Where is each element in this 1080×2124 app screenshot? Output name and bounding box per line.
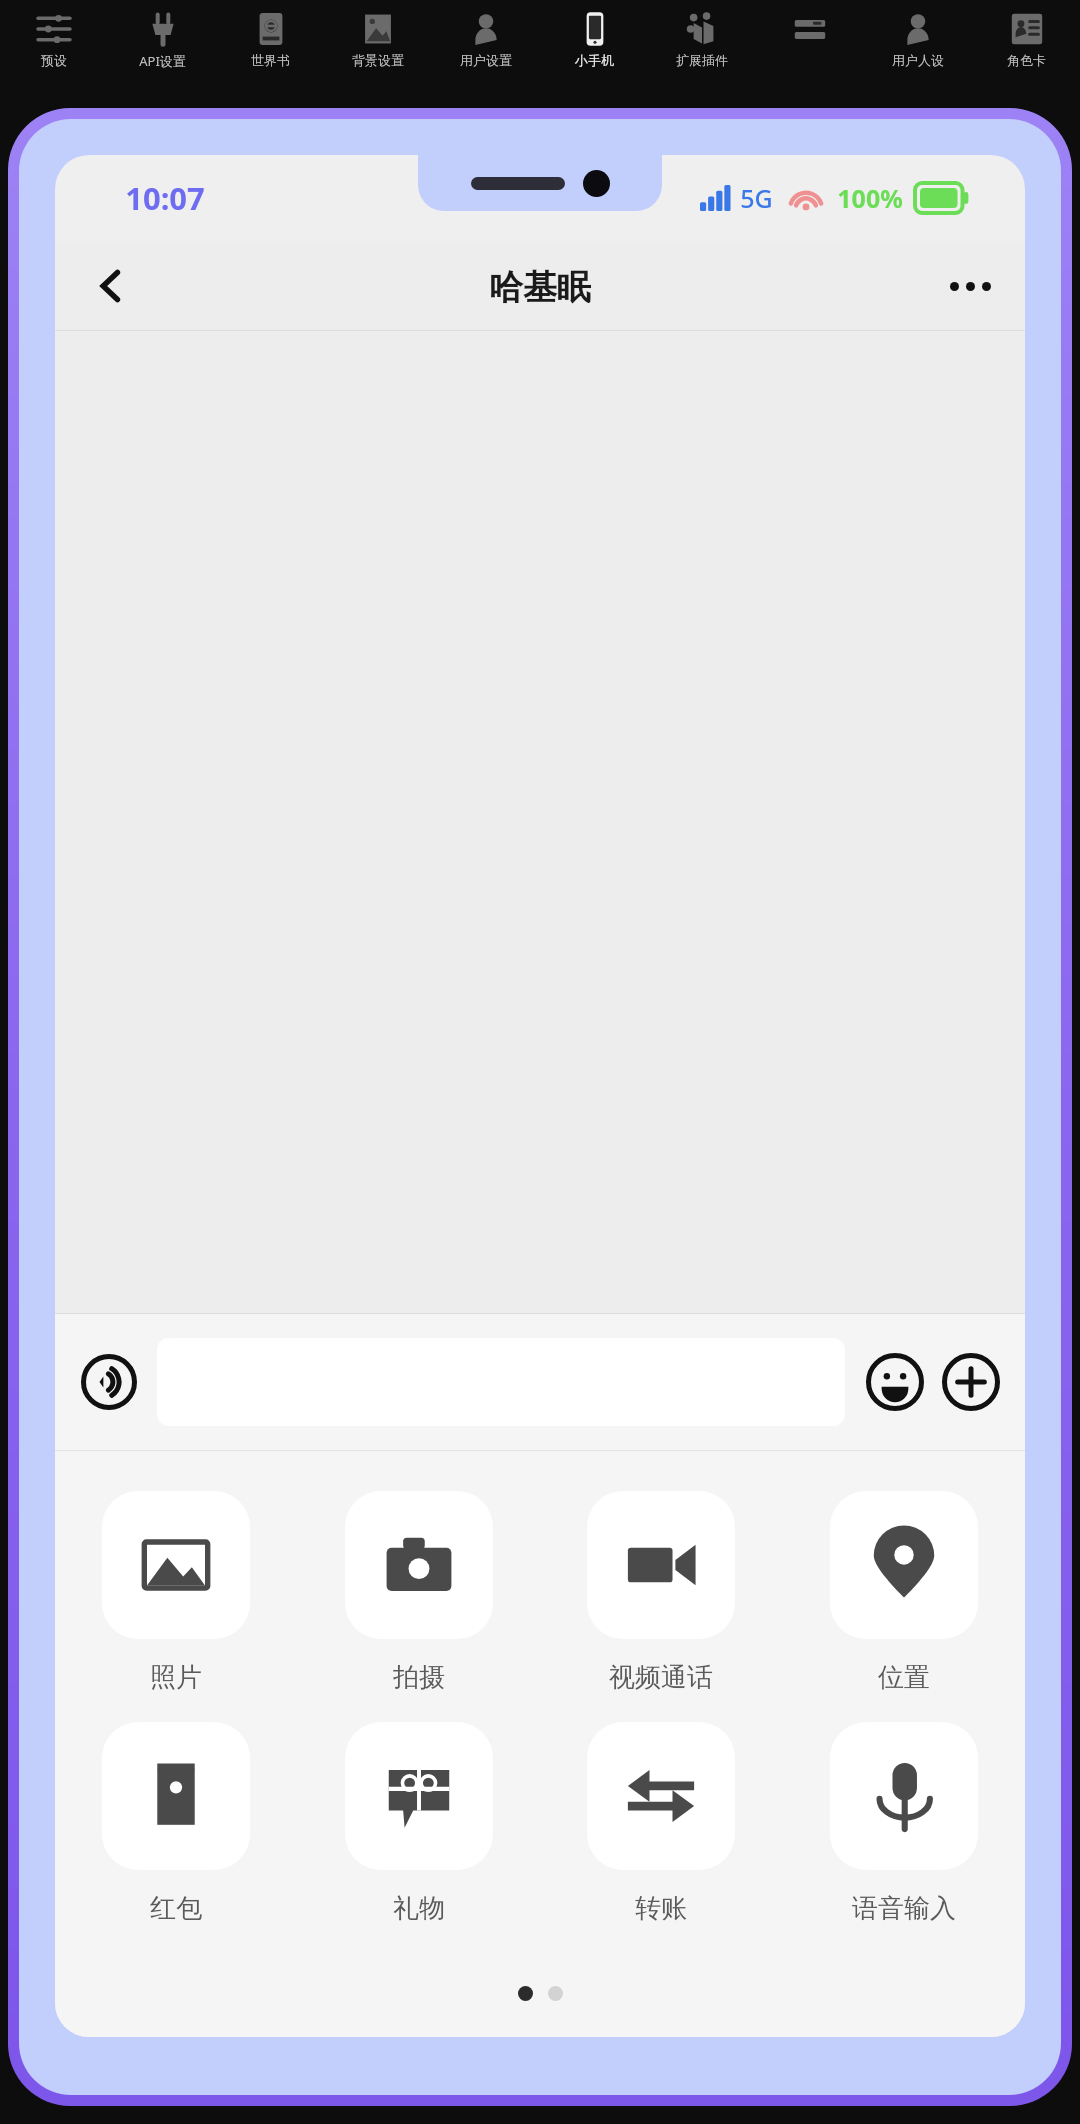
button[interactable]: 世界书	[216, 0, 324, 68]
staticText: 照片	[150, 1661, 202, 1694]
button[interactable]: 用户人设	[864, 0, 972, 68]
button[interactable]: 视频通话	[568, 1491, 754, 1694]
staticText: API设置	[139, 52, 186, 70]
button[interactable]: 小手机	[540, 0, 648, 68]
staticText: 扩展插件	[676, 52, 728, 68]
staticText: 礼物	[393, 1892, 445, 1925]
button[interactable]: 拍摄	[326, 1491, 512, 1694]
button[interactable]: Voice message	[73, 1346, 145, 1418]
button[interactable]: 预设	[0, 0, 108, 68]
button[interactable]: 照片	[83, 1491, 269, 1694]
staticText: 语音输入	[852, 1892, 956, 1925]
staticText: 背景设置	[352, 52, 404, 68]
staticText: 预设	[41, 52, 67, 68]
button[interactable]: 转账	[568, 1722, 754, 1925]
staticText: 100%	[837, 181, 903, 215]
staticText: 红包	[150, 1892, 202, 1925]
staticText: 角色卡	[1007, 52, 1046, 68]
staticText: 用户人设	[892, 52, 944, 68]
button[interactable]: 礼物	[326, 1722, 512, 1925]
button[interactable]: 背景设置	[324, 0, 432, 68]
button[interactable]: Toolbar	[756, 0, 864, 52]
button[interactable]: 语音输入	[811, 1722, 997, 1925]
button[interactable]: 红包	[83, 1722, 269, 1925]
staticText: 拍摄	[393, 1661, 445, 1694]
button[interactable]: More functions	[935, 1346, 1007, 1418]
staticText: 10:07	[125, 177, 205, 219]
button[interactable]: 位置	[811, 1491, 997, 1694]
staticText: 5G	[740, 181, 773, 215]
staticText: 位置	[878, 1661, 930, 1694]
button[interactable]: API设置	[108, 0, 216, 70]
button[interactable]: More options	[937, 253, 1003, 319]
button[interactable]: Back	[79, 253, 145, 319]
button[interactable]: 用户设置	[432, 0, 540, 68]
button[interactable]: Emoji	[859, 1346, 931, 1418]
staticText: 转账	[635, 1892, 687, 1925]
button[interactable]: 扩展插件	[648, 0, 756, 68]
button[interactable]: 角色卡	[972, 0, 1080, 68]
staticText: 视频通话	[609, 1661, 713, 1694]
staticText: 世界书	[251, 52, 290, 68]
staticText: 哈基眠	[489, 266, 591, 309]
staticText: 用户设置	[460, 52, 512, 68]
staticText: 小手机	[575, 52, 614, 68]
